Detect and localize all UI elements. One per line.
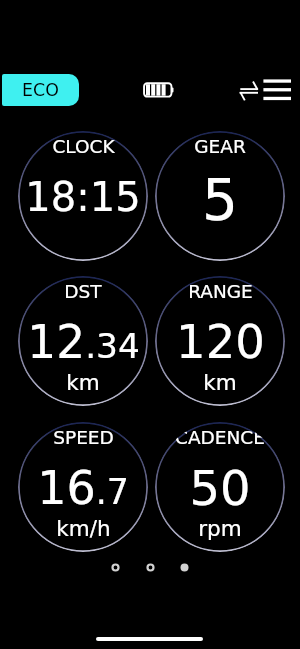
button[interactable]: CLOCK [18, 131, 148, 261]
button[interactable]: GEAR [155, 131, 285, 261]
staticText: DST [64, 281, 102, 303]
staticText: rpm [198, 516, 242, 541]
button[interactable]: Page [111, 563, 120, 572]
button[interactable]: DST [18, 276, 148, 406]
button[interactable]: Page [180, 563, 189, 572]
staticText: 50 [189, 460, 251, 516]
staticText: 12.34 [27, 316, 140, 369]
staticText: CLOCK [52, 136, 115, 158]
staticText: 18:15 [25, 174, 141, 221]
button[interactable]: CADENCE [155, 422, 285, 552]
button[interactable]: Page [146, 563, 155, 572]
staticText: CADENCE [175, 427, 265, 449]
button[interactable]: ECO [2, 74, 79, 106]
staticText: GEAR [194, 136, 246, 158]
staticText: SPEED [53, 427, 114, 449]
staticText: km/h [56, 516, 111, 541]
staticText: km [203, 370, 237, 395]
staticText: km [66, 370, 100, 395]
button[interactable]: Menu [263, 78, 291, 101]
button[interactable]: Swap units [238, 80, 261, 102]
button[interactable]: Battery [141, 79, 175, 101]
staticText: ECO [22, 80, 59, 100]
staticText: RANGE [188, 281, 253, 303]
staticText: 5 [202, 168, 238, 234]
button[interactable]: SPEED [18, 422, 148, 552]
button[interactable]: RANGE [155, 276, 285, 406]
staticText: 120 [176, 315, 265, 369]
staticText: 16.7 [37, 461, 129, 515]
